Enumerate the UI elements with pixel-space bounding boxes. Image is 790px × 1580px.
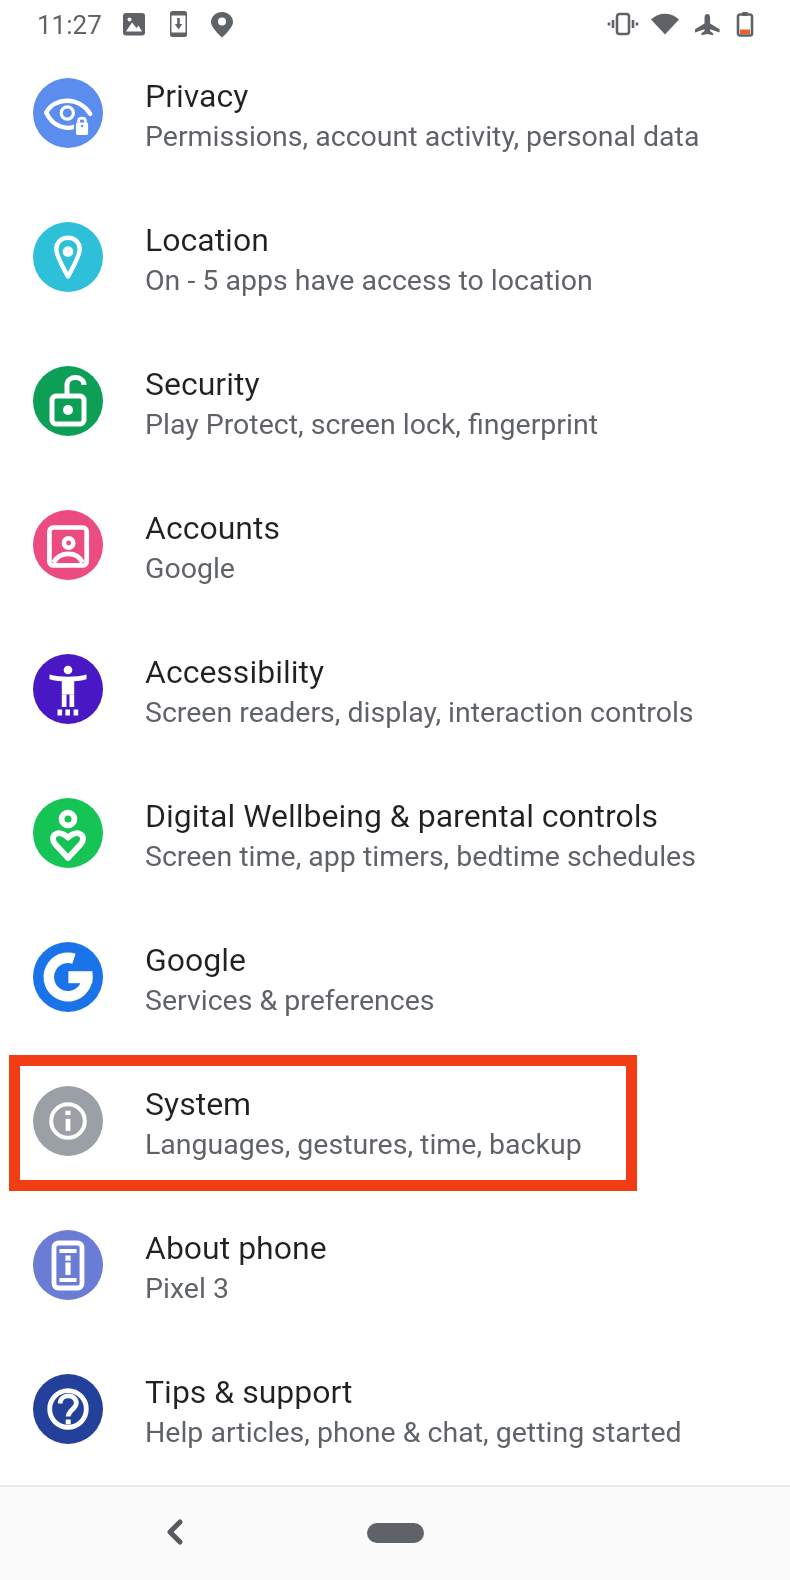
staticText: Accessibility [145, 653, 325, 691]
staticText: Accounts [145, 509, 280, 547]
staticText: Play Protect, screen lock, fingerprint [145, 408, 598, 441]
staticText: Tips & support [145, 1373, 353, 1411]
staticText: Screen readers, display, interaction con… [145, 696, 694, 729]
button[interactable]: System [0, 1049, 790, 1193]
staticText: Google [145, 552, 235, 585]
button[interactable]: Accounts [0, 473, 790, 617]
button[interactable]: Tips & support [0, 1337, 790, 1481]
button[interactable]: Accessibility [0, 617, 790, 761]
button[interactable]: Location [0, 185, 790, 329]
staticText: Pixel 3 [145, 1272, 229, 1305]
staticText: Privacy [145, 77, 249, 115]
staticText: Google [145, 941, 247, 979]
staticText: Location [145, 221, 269, 259]
staticText: On - 5 apps have access to location [145, 264, 593, 297]
staticText: Security [145, 365, 260, 403]
staticText: Permissions, account activity, personal … [145, 120, 700, 153]
other: Status bar [0, 0, 790, 60]
button[interactable]: Back [150, 1507, 200, 1557]
button[interactable]: About phone [0, 1193, 790, 1337]
staticText: About phone [145, 1229, 327, 1267]
staticText: 11:27 [37, 10, 102, 40]
staticText: Languages, gestures, time, backup [145, 1128, 582, 1161]
button[interactable]: Digital Wellbeing & parental controls [0, 761, 790, 905]
staticText: Digital Wellbeing & parental controls [145, 797, 659, 835]
button[interactable]: Security [0, 329, 790, 473]
staticText: Help articles, phone & chat, getting sta… [145, 1416, 682, 1449]
staticText: Services & preferences [145, 984, 435, 1017]
button[interactable]: Google [0, 905, 790, 1049]
button[interactable]: Privacy [0, 41, 790, 185]
staticText: System [145, 1085, 252, 1123]
staticText: Screen time, app timers, bedtime schedul… [145, 840, 696, 873]
button[interactable]: Home [367, 1523, 424, 1543]
